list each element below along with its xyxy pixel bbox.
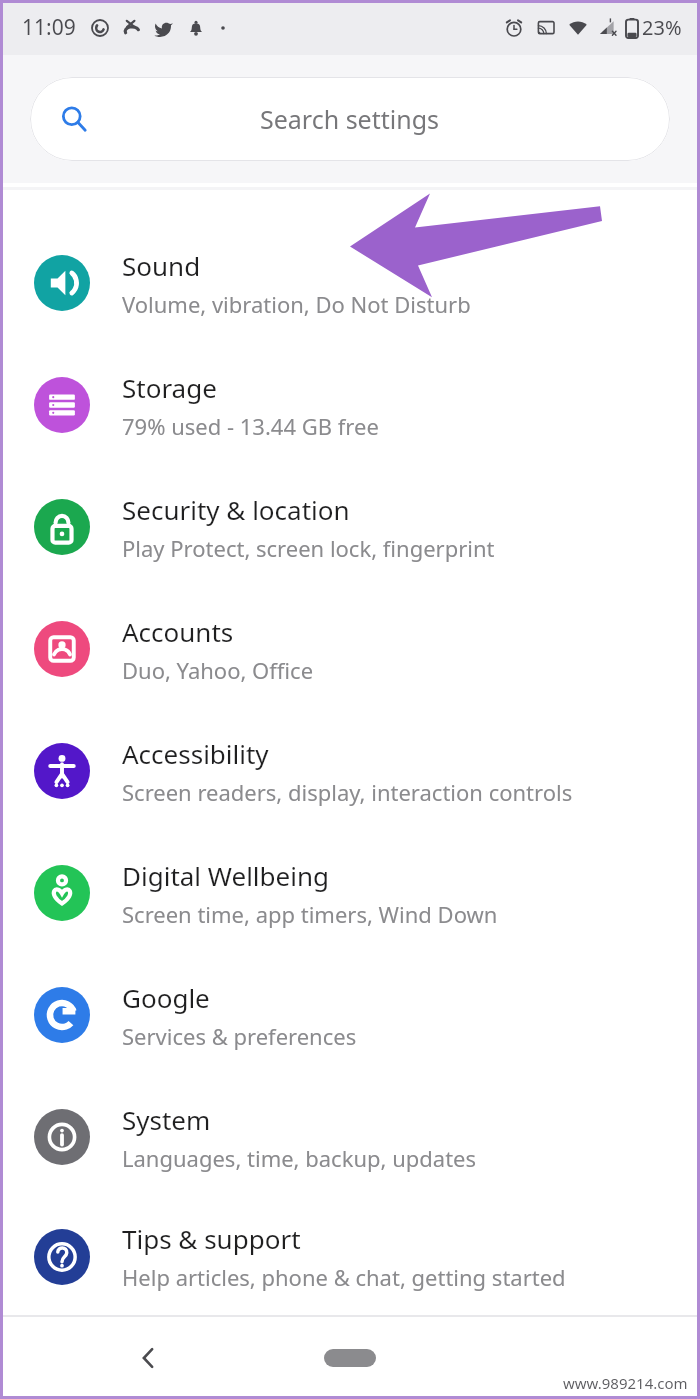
staticText: 79% used - 13.44 GB free: [122, 411, 379, 441]
staticText: Storage: [122, 370, 217, 405]
button[interactable]: Storage: [0, 344, 700, 466]
button[interactable]: Back: [118, 1328, 178, 1388]
staticText: 23%: [642, 14, 682, 41]
staticText: www.989214.com: [563, 1373, 688, 1393]
staticText: Google: [122, 980, 210, 1015]
staticText: Tips & support: [122, 1221, 301, 1256]
button[interactable]: Digital Wellbeing: [0, 832, 700, 954]
button[interactable]: Sound: [0, 222, 700, 344]
staticText: Search settings: [260, 102, 440, 136]
staticText: Security & location: [122, 492, 350, 527]
button[interactable]: Accounts: [0, 588, 700, 710]
button[interactable]: Home: [310, 1336, 390, 1380]
staticText: Accounts: [122, 614, 234, 649]
staticText: 11:09: [22, 13, 76, 42]
button[interactable]: Google: [0, 954, 700, 1076]
staticText: Accessibility: [122, 736, 269, 771]
button[interactable]: Security & location: [0, 466, 700, 588]
staticText: Duo, Yahoo, Office: [122, 655, 314, 685]
staticText: Help articles, phone & chat, getting sta…: [122, 1262, 566, 1292]
staticText: Volume, vibration, Do Not Disturb: [122, 289, 471, 319]
staticText: Languages, time, backup, updates: [122, 1143, 477, 1173]
button[interactable]: Search settings: [30, 77, 670, 161]
staticText: Screen readers, display, interaction con…: [122, 777, 573, 807]
staticText: Digital Wellbeing: [122, 858, 329, 893]
staticText: Screen time, app timers, Wind Down: [122, 899, 498, 929]
staticText: Play Protect, screen lock, fingerprint: [122, 533, 495, 563]
button[interactable]: Accessibility: [0, 710, 700, 832]
button[interactable]: System: [0, 1076, 700, 1198]
staticText: Services & preferences: [122, 1021, 357, 1051]
button[interactable]: Tips & support: [0, 1198, 700, 1315]
staticText: System: [122, 1102, 211, 1137]
staticText: Sound: [122, 248, 201, 283]
